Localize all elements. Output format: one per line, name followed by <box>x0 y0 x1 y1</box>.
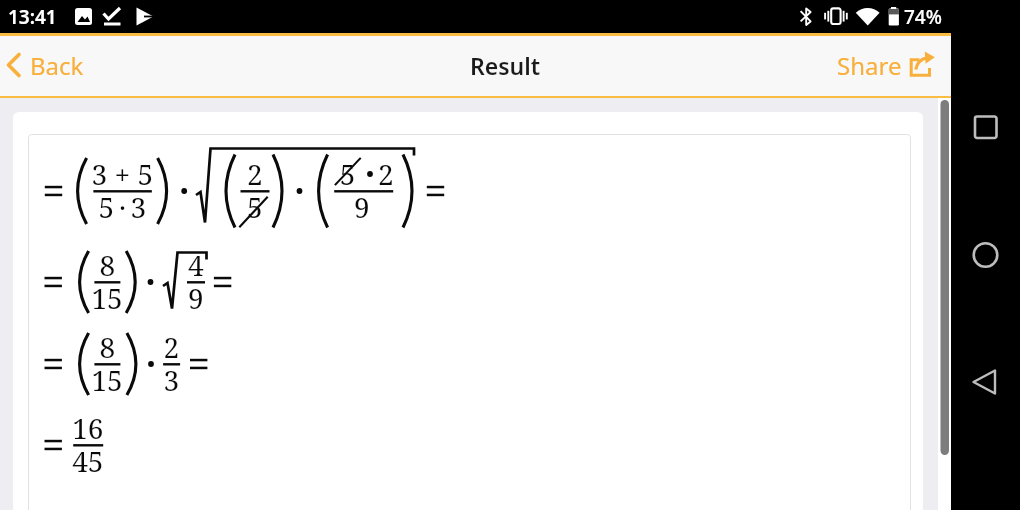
staticText: 13:41 <box>8 4 57 30</box>
button[interactable]: Share <box>837 42 940 88</box>
button[interactable] <box>958 227 1013 282</box>
staticText: 74% <box>904 4 942 30</box>
button[interactable] <box>958 354 1013 409</box>
staticText: Back <box>30 49 84 82</box>
button[interactable] <box>958 100 1013 155</box>
staticText: Share <box>837 49 902 82</box>
staticText: Result <box>470 50 541 81</box>
button[interactable]: Back <box>2 42 98 88</box>
